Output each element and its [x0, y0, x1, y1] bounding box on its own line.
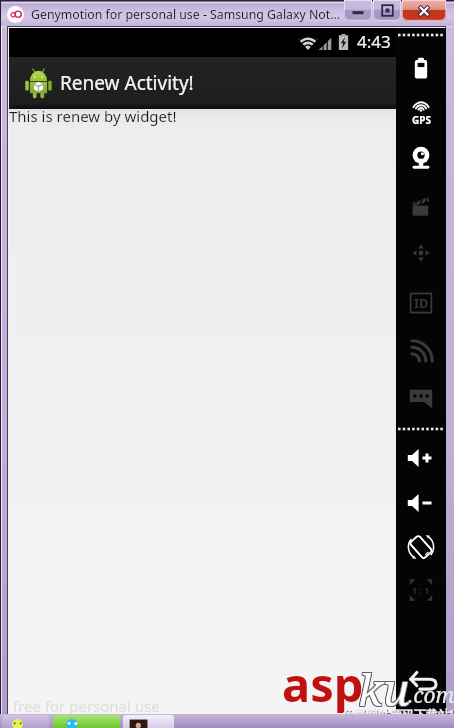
button[interactable]: Camera [407, 144, 435, 172]
button[interactable]: Battery [407, 55, 435, 83]
staticText: ku [358, 660, 410, 720]
button[interactable]: Task 1 [2, 715, 49, 728]
staticText: 1 : 1 [412, 584, 430, 596]
staticText: free for personal use [13, 696, 160, 716]
staticText: Renew Activity! [60, 70, 194, 96]
staticText: .com [408, 681, 454, 710]
staticText: 免费网站源码下载站! [342, 706, 454, 722]
staticText: This is renew by widget! [9, 106, 177, 126]
staticText: ku [359, 658, 411, 718]
button[interactable]: Screen record [407, 193, 435, 221]
button[interactable]: Maximize [373, 0, 401, 21]
button[interactable]: Identifiers [407, 289, 435, 317]
staticText: ku [357, 658, 409, 718]
button[interactable]: Accelerometer [407, 239, 435, 267]
staticText: 免费网站源码下载站! [343, 707, 454, 723]
staticText: ku [358, 658, 410, 718]
button[interactable]: Volume down [406, 488, 436, 518]
staticText: ku [357, 659, 409, 719]
staticText: ID [414, 294, 429, 312]
staticText: ku [359, 659, 411, 719]
button[interactable]: Close [402, 0, 446, 21]
button[interactable]: GPS [407, 99, 435, 127]
staticText: GPS [412, 113, 431, 127]
staticText: Genymotion for personal use - Samsung Ga… [31, 6, 341, 23]
staticText: ku [358, 659, 410, 719]
button[interactable]: Minimize [344, 0, 372, 21]
button[interactable]: App icon [7, 6, 24, 23]
button[interactable]: Network [407, 338, 435, 366]
staticText: 4:43 [357, 30, 391, 53]
button[interactable]: SMS [407, 383, 435, 411]
button[interactable]: Reset size 1:1 [407, 576, 435, 604]
staticText: ku [357, 660, 409, 720]
button[interactable]: Task 3 [123, 715, 174, 728]
staticText: ku [359, 660, 411, 720]
staticText: asp [282, 652, 364, 716]
button[interactable]: Rotate [406, 532, 436, 562]
button[interactable]: Volume up [406, 443, 436, 473]
button[interactable]: Task 2 [53, 715, 120, 728]
